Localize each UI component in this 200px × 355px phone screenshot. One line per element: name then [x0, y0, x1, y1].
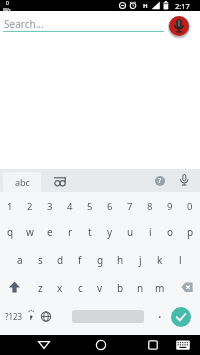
staticText: 0	[6, 0, 9, 7]
staticText: z	[38, 281, 43, 295]
staticText: b	[117, 281, 124, 295]
button[interactable]	[90, 335, 112, 355]
button[interactable]: x	[50, 279, 70, 296]
button[interactable]: j	[130, 251, 150, 268]
staticText: d	[57, 253, 64, 267]
button[interactable]: d	[50, 251, 70, 268]
button[interactable]: 6	[100, 198, 120, 215]
staticText: 8	[147, 200, 153, 213]
staticText: y	[107, 225, 113, 239]
button[interactable]: 4	[60, 198, 80, 215]
staticText: c	[78, 281, 83, 295]
staticText: 3	[47, 200, 53, 213]
button[interactable]	[2, 279, 27, 296]
staticText: abc	[15, 176, 30, 188]
button[interactable]	[142, 335, 164, 355]
staticText: 0	[187, 200, 193, 213]
button[interactable]: p	[180, 223, 200, 240]
button[interactable]: n	[130, 279, 150, 296]
button[interactable]: ?123	[2, 308, 26, 325]
staticText: 2	[27, 200, 33, 213]
staticText: k	[157, 253, 163, 267]
button[interactable]: abc	[3, 172, 41, 192]
button[interactable]: q	[0, 223, 20, 240]
button[interactable]: u	[120, 223, 140, 240]
staticText: i	[149, 225, 152, 239]
button[interactable]	[174, 171, 194, 191]
button[interactable]: k	[150, 251, 170, 268]
staticText: 9	[167, 200, 173, 213]
button[interactable]: 3	[40, 198, 60, 215]
staticText: g	[97, 253, 104, 267]
staticText: v	[97, 281, 103, 295]
staticText: m	[155, 281, 165, 295]
button[interactable]: h	[110, 251, 130, 268]
button[interactable]: 9	[160, 198, 180, 215]
button[interactable]	[42, 172, 78, 192]
button[interactable]: 1	[0, 198, 20, 215]
staticText: r	[68, 225, 73, 239]
staticText: 5	[87, 200, 93, 213]
button[interactable]: e	[40, 223, 60, 240]
staticText: H	[143, 2, 148, 10]
button[interactable]	[173, 279, 198, 296]
staticText: s	[38, 253, 43, 267]
button[interactable]: 7	[120, 198, 140, 215]
button[interactable]: v	[90, 279, 110, 296]
staticText: n	[137, 281, 144, 295]
button[interactable]: f	[70, 251, 90, 268]
button[interactable]: 0	[180, 198, 200, 215]
staticText: 2:17	[175, 1, 190, 11]
button[interactable]: t	[80, 223, 100, 240]
button[interactable]: m	[150, 279, 170, 296]
button[interactable]: 8	[140, 198, 160, 215]
button[interactable]: b	[110, 279, 130, 296]
button[interactable]: w	[20, 223, 40, 240]
button[interactable]: a	[10, 251, 30, 268]
button[interactable]: 2	[20, 198, 40, 215]
button[interactable]: o	[160, 223, 180, 240]
button[interactable]: g	[90, 251, 110, 268]
button[interactable]: s	[30, 251, 50, 268]
staticText: ?123	[5, 311, 23, 322]
staticText: e	[47, 225, 53, 239]
staticText: f	[78, 253, 82, 267]
button[interactable]	[24, 308, 38, 325]
staticText: w	[26, 225, 34, 239]
staticText: 4	[67, 200, 73, 213]
staticText: ?	[158, 176, 162, 186]
button[interactable]: ?	[152, 172, 168, 190]
button[interactable]: l	[170, 251, 190, 268]
staticText: o	[167, 225, 174, 239]
staticText: p	[187, 225, 194, 239]
staticText: l	[179, 253, 182, 267]
staticText: a	[17, 253, 23, 267]
staticText: u	[127, 225, 134, 239]
staticText: 6	[107, 200, 113, 213]
button[interactable]	[33, 335, 55, 355]
button[interactable]: Search...	[0, 11, 168, 35]
staticText: 1	[7, 200, 13, 213]
button[interactable]	[38, 308, 54, 325]
button[interactable]: .	[152, 308, 168, 325]
staticText: q	[7, 225, 14, 239]
staticText: Search...	[4, 17, 44, 31]
staticText: .	[158, 304, 162, 321]
staticText: j	[139, 253, 142, 267]
staticText: 7	[127, 200, 133, 213]
button[interactable]: i	[140, 223, 160, 240]
staticText: x	[57, 281, 63, 295]
button[interactable]	[172, 335, 194, 355]
button[interactable]	[171, 307, 191, 327]
staticText: h	[117, 253, 124, 267]
button[interactable]: c	[70, 279, 90, 296]
button[interactable]: y	[100, 223, 120, 240]
button[interactable]	[169, 16, 189, 36]
button[interactable]: 5	[80, 198, 100, 215]
button[interactable]: r	[60, 223, 80, 240]
button[interactable]: z	[30, 279, 50, 296]
staticText: t	[88, 225, 92, 239]
staticText: KB/s	[3, 7, 11, 11]
